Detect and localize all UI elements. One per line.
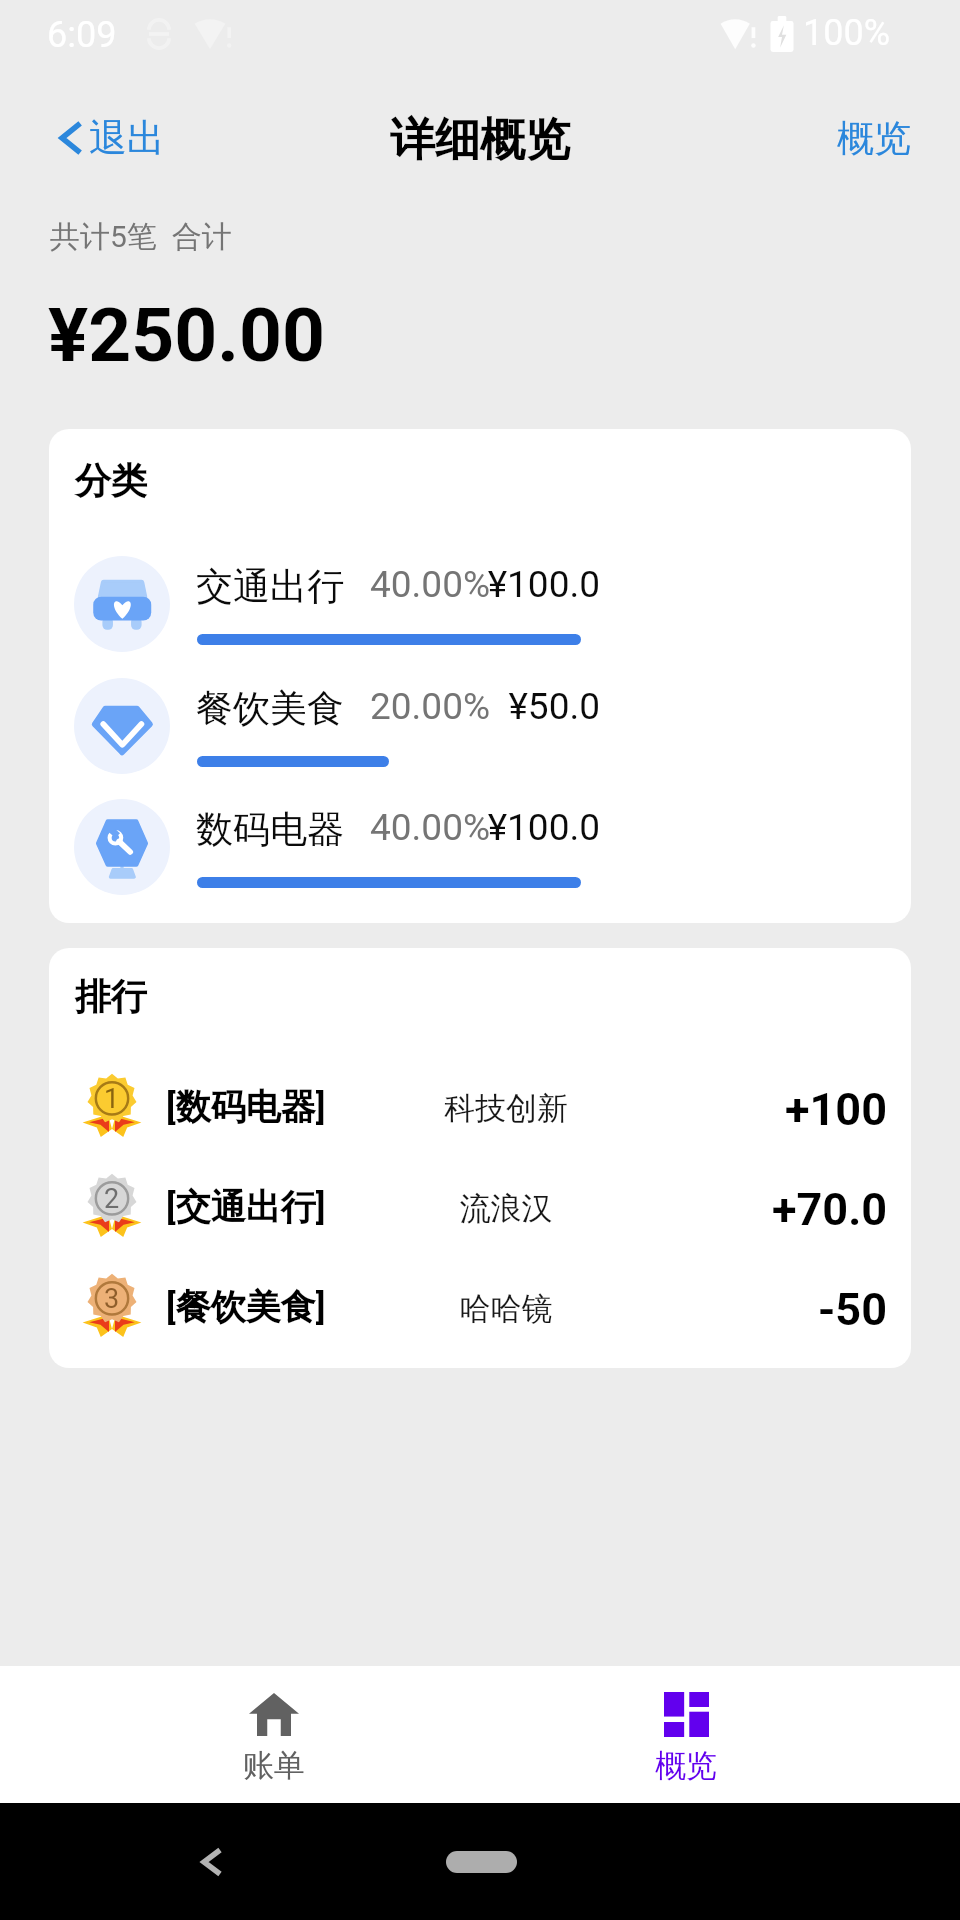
staticText: ¥100.0	[400, 563, 600, 606]
staticText: 账单	[243, 1746, 305, 1785]
staticText: 共计5笔 合计	[50, 218, 232, 256]
button[interactable]: 3	[49, 1257, 911, 1357]
staticText: 6:09	[47, 14, 117, 56]
staticText: 哈哈镜	[377, 1289, 635, 1328]
staticText: [数码电器]	[166, 1085, 326, 1129]
staticText: [餐饮美食]	[166, 1285, 326, 1329]
staticText: 科技创新	[377, 1089, 635, 1128]
staticText: 流浪汉	[377, 1189, 635, 1228]
staticText: 交通出行	[196, 563, 344, 610]
staticText: ¥50.0	[400, 685, 600, 728]
staticText: +70.0	[647, 1183, 887, 1236]
staticText: [交通出行]	[166, 1185, 326, 1229]
button[interactable]: 数码电器	[49, 786, 911, 908]
button[interactable]: 概览	[480, 1666, 892, 1803]
staticText: 40.00%	[370, 563, 491, 606]
staticText: -50	[647, 1283, 887, 1336]
staticText: ¥250.00	[48, 291, 326, 379]
staticText: 详细概览	[390, 112, 570, 169]
button[interactable]: 退出	[0, 88, 185, 188]
button[interactable]: 交通出行	[49, 543, 911, 665]
staticText: 排行	[75, 974, 147, 1019]
button[interactable]: 2	[49, 1157, 911, 1257]
staticText: 餐饮美食	[196, 685, 344, 732]
staticText: 数码电器	[196, 806, 344, 853]
staticText: 100%	[803, 12, 891, 54]
staticText: 2	[104, 1183, 120, 1215]
staticText: 退出	[89, 114, 165, 162]
button[interactable]: 账单	[68, 1666, 480, 1803]
button[interactable]: 概览	[817, 88, 960, 188]
button[interactable]: 餐饮美食	[49, 665, 911, 787]
staticText: 分类	[75, 458, 147, 503]
staticText: 1	[104, 1083, 120, 1115]
staticText: 3	[104, 1283, 120, 1315]
button[interactable]: 1	[49, 1057, 911, 1157]
staticText: 概览	[837, 115, 911, 162]
staticText: +100	[647, 1083, 887, 1136]
other: Back	[204, 1850, 220, 1874]
staticText: 20.00%	[370, 685, 491, 728]
staticText: 40.00%	[370, 806, 491, 849]
staticText: 概览	[655, 1746, 717, 1785]
staticText: ¥100.0	[400, 806, 600, 849]
